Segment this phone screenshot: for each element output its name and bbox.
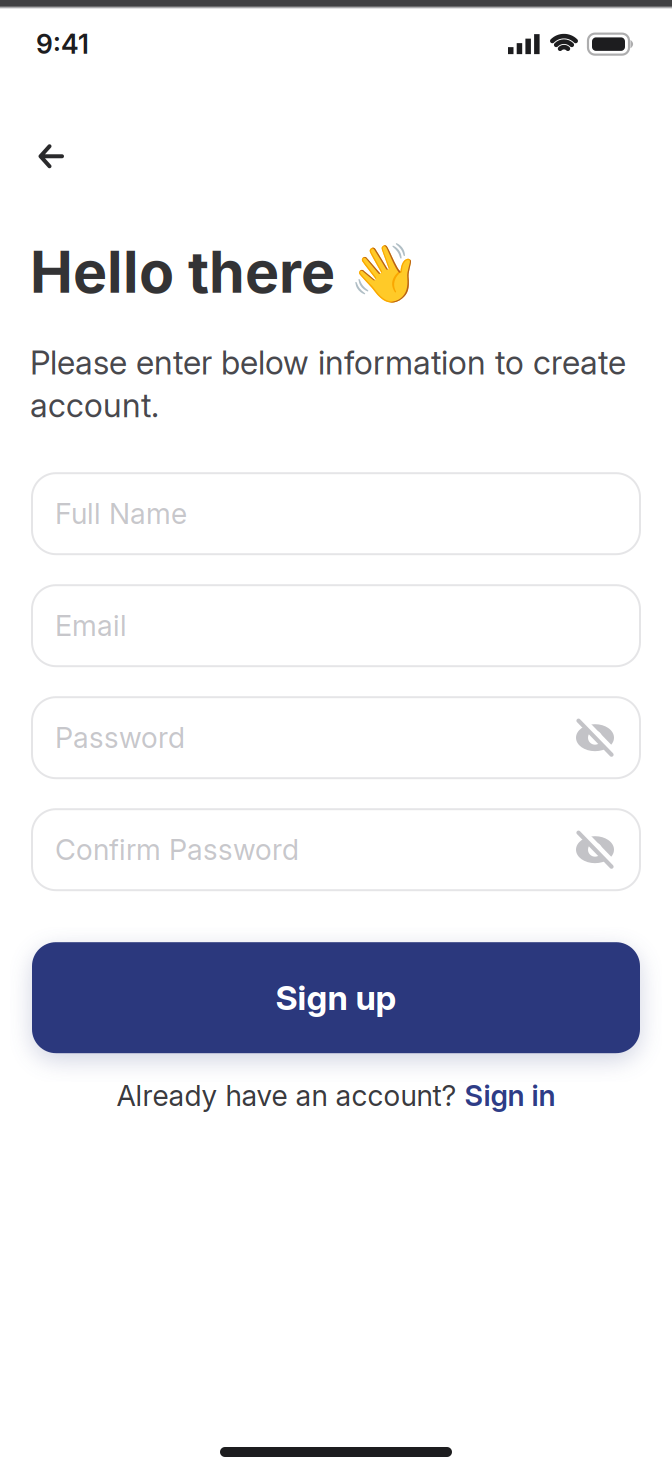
button[interactable]: Back: [31, 137, 70, 175]
staticText: Email: [55, 608, 127, 643]
staticText: Confirm Password: [55, 832, 299, 867]
button[interactable]: Sign in: [464, 1078, 555, 1113]
staticText: Sign up: [275, 977, 396, 1018]
button[interactable]: Sign up: [32, 942, 640, 1053]
staticText: Full Name: [55, 496, 187, 531]
staticText: Password: [55, 720, 185, 755]
staticText: Sign in: [464, 1078, 555, 1113]
staticText: Hello there 👋: [30, 237, 420, 307]
button[interactable]: Show password: [576, 832, 614, 868]
staticText: Please enter below information to create…: [30, 343, 626, 425]
button[interactable]: Show password: [576, 720, 614, 756]
staticText: 9:41: [36, 28, 89, 60]
staticText: Already have an account?: [116, 1078, 464, 1113]
